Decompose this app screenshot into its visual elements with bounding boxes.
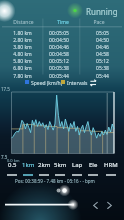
staticText: 05:05 [96,30,109,37]
staticText: 2.80 km [13,37,32,44]
staticText: 04:50 [96,37,109,44]
staticText: Intervals [67,80,88,87]
button[interactable]: Position slider [0,0,124,200]
staticText: Running [86,6,118,17]
staticText: Distance [13,19,34,26]
button[interactable]: HRM [102,161,120,177]
staticText: HRM [104,161,118,169]
staticText: Time [57,19,69,26]
staticText: Pos: 00:38:59 - 7.48 km - 05:16 - - bpm [15,178,95,184]
staticText: 05:44 [96,73,109,80]
staticText: 00:04:58 [49,51,69,58]
staticText: 00:05:05 [49,30,69,37]
staticText: 5.80 km [13,58,32,65]
staticText: 0.0 km [7,158,20,163]
staticText: 00:05:44 [49,73,69,80]
staticText: 05:12 [96,58,109,65]
button[interactable]: 5km [51,161,69,177]
button[interactable]: Swap axes [89,79,98,88]
staticText: 00:05:12 [49,58,69,65]
button[interactable]: Next [103,198,117,212]
staticText: 04:58 [96,51,109,58]
staticText: 00:05:38 [49,65,69,72]
staticText: 4.80 km [13,51,32,58]
staticText: 17.5 [1,86,10,92]
button[interactable]: 2km [35,161,53,177]
staticText: Pace [93,19,105,26]
button[interactable]: Ele [84,161,102,177]
staticText: 7.5 [1,154,8,160]
staticText: Lap [72,161,83,169]
staticText: 00:04:50 [49,37,69,44]
staticText: 05:38 [96,65,109,72]
staticText: 1km [22,161,35,169]
staticText: Ele [89,161,98,169]
staticText: 7.80 km [13,73,32,80]
button[interactable]: Previous [88,198,102,212]
staticText: 6.80 km [13,65,32,72]
staticText: 00:04:46 [49,44,69,51]
staticText: 0.5 [8,161,17,169]
staticText: 5km [54,161,67,169]
button[interactable]: 1km [19,161,37,177]
staticText: 2km [38,161,51,169]
button[interactable]: Lap [68,161,86,177]
staticText: 1.80 km [13,30,32,37]
staticText: 3.80 km [13,44,32,51]
staticText: Speed (km/h) [31,80,63,87]
button[interactable]: 0.5 [3,161,21,177]
staticText: 04:46 [96,44,109,51]
